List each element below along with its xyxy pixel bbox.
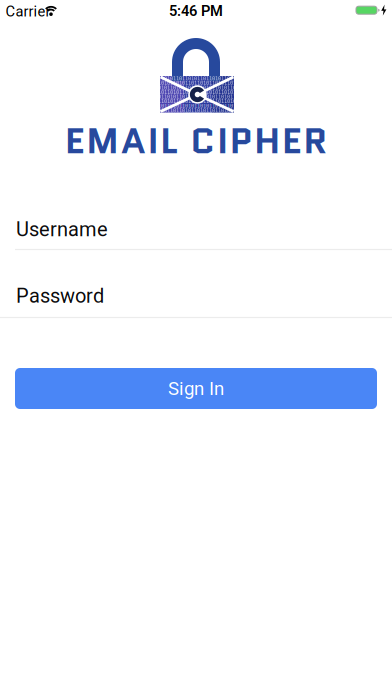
staticText: 5:46 PM: [169, 2, 223, 19]
staticText: 010110101101011011010110101101: [152, 93, 242, 100]
staticText: 101101011010110101101101101010: [152, 98, 242, 104]
button[interactable]: Sign In: [15, 368, 377, 409]
staticText: EMAIL CIPHER: [65, 114, 327, 167]
staticText: 110101101101011010110110101011: [152, 107, 242, 113]
staticText: 011011010110101101011010110101: [152, 103, 242, 109]
staticText: 101101011011010110110101101101: [152, 75, 242, 81]
staticText: 011010110101101101011010110110: [152, 80, 242, 86]
staticText: Sign In: [168, 378, 224, 399]
staticText: 101011010110110101101011010111: [152, 89, 242, 95]
staticText: Username: [16, 218, 108, 241]
staticText: 110101101011010110101101011010: [152, 84, 242, 91]
button[interactable]: Username: [0, 207, 392, 251]
staticText: Password: [16, 285, 104, 307]
button[interactable]: Password: [0, 274, 392, 318]
staticText: Carrier: [5, 3, 50, 20]
